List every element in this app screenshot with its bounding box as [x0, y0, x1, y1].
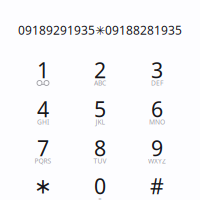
staticText: 2 [94, 56, 106, 84]
staticText: 3 [151, 56, 163, 84]
button[interactable]: 2 [74, 53, 126, 89]
staticText: DEF [151, 79, 163, 87]
staticText: MNO [149, 118, 165, 126]
staticText: 0 [94, 172, 106, 200]
staticText: ABC [94, 79, 106, 87]
button[interactable]: 0 [74, 169, 126, 200]
staticText: # [150, 172, 164, 200]
button[interactable]: 8 [74, 131, 126, 167]
staticText: 5 [94, 95, 106, 123]
button[interactable]: 5 [74, 92, 126, 128]
staticText: 4 [37, 95, 49, 123]
staticText: 7 [37, 134, 49, 162]
staticText: 09189291935✳09188281935 [18, 22, 182, 38]
button[interactable]: 9 [131, 131, 183, 167]
staticText: 6 [151, 95, 163, 123]
staticText: 1 [37, 56, 49, 84]
staticText: PQRS [34, 157, 51, 165]
staticText: JKL [95, 118, 104, 126]
button[interactable]: 6 [131, 92, 183, 128]
staticText: GHI [37, 118, 49, 126]
staticText: WXYZ [148, 157, 166, 165]
button[interactable]: # [131, 169, 183, 200]
button[interactable]: 4 [17, 92, 69, 128]
button[interactable]: 3 [131, 53, 183, 89]
button[interactable]: 1 [17, 53, 69, 89]
button[interactable]: ∗ [17, 169, 69, 200]
staticText: TUV [93, 157, 106, 165]
staticText: + [98, 195, 102, 200]
staticText: ∗ [34, 174, 52, 198]
staticText: 8 [94, 134, 106, 162]
staticText: 9 [151, 134, 163, 162]
button[interactable]: 7 [17, 131, 69, 167]
